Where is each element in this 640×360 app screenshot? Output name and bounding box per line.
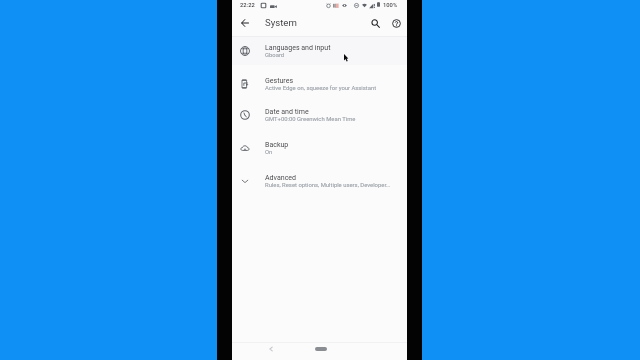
staticText: Gestures [265,76,294,84]
staticText: GMT+00:00 Greenwich Mean Time [265,116,356,123]
staticText: On [265,149,273,156]
staticText: Advanced [265,173,297,181]
button[interactable]: Back [235,13,255,33]
button[interactable]: Backup [232,134,407,162]
staticText: 22:22 [240,2,255,9]
staticText: Date and time [265,107,309,115]
staticText: Active Edge on, squeeze for your Assista… [265,85,377,92]
button[interactable]: Search [365,13,385,33]
staticText: 100% [383,2,398,9]
staticText: System [265,17,297,28]
staticText: Rules, Reset options, Multiple users, De… [265,182,390,189]
button[interactable]: Gestures [232,70,407,98]
button[interactable]: Back [263,341,279,357]
staticText: Languages and input [265,43,331,51]
button[interactable]: Date and time [232,101,407,129]
button[interactable]: Home [315,347,327,351]
button[interactable]: Languages and input [232,37,407,65]
staticText: Backup [265,140,289,148]
button[interactable]: Advanced [232,167,407,195]
button[interactable]: Help [386,13,406,33]
staticText: Gboard [265,52,285,59]
